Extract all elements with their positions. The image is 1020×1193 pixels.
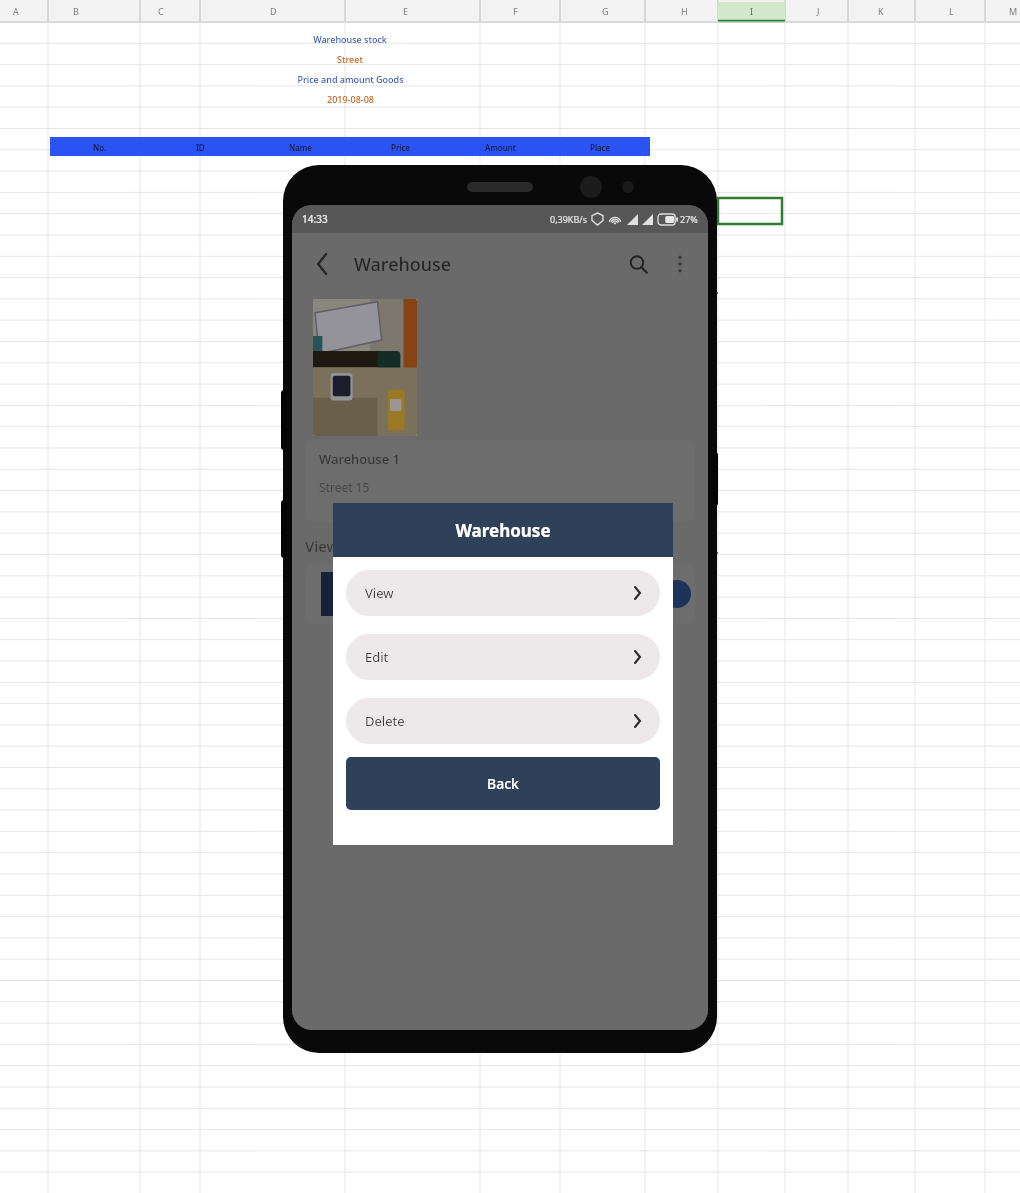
button[interactable]: Item photo <box>313 299 417 436</box>
staticText: 0,39KB/s <box>550 213 587 225</box>
staticText: B <box>73 5 79 17</box>
staticText: H <box>681 5 688 17</box>
button[interactable]: Edit <box>346 634 660 680</box>
staticText: Back <box>487 774 519 793</box>
staticText: Street 15 <box>319 479 370 495</box>
staticText: Street <box>337 53 363 65</box>
staticText: M <box>1009 5 1018 17</box>
staticText: Edit <box>365 648 389 666</box>
button[interactable]: Warehouse 1 <box>305 440 695 522</box>
staticText: Name <box>289 142 312 153</box>
staticText: E <box>403 5 409 17</box>
staticText: ID <box>196 142 205 153</box>
staticText: 2019-08-08 <box>327 93 374 105</box>
staticText: A <box>13 5 19 17</box>
staticText: Place <box>590 142 611 153</box>
staticText: Price and amount Goods <box>297 73 404 85</box>
staticText: F <box>513 5 518 17</box>
staticText: D <box>270 5 277 17</box>
staticText: I <box>750 5 754 17</box>
staticText: 27% <box>680 213 698 225</box>
staticText: Warehouse 1 <box>319 450 400 468</box>
staticText: No. <box>93 142 107 153</box>
staticText: Warehouse <box>455 519 551 542</box>
staticText: 14:33 <box>302 212 328 226</box>
button[interactable]: Search <box>616 242 660 286</box>
staticText: Warehouse stock <box>313 33 387 45</box>
staticText: Warehouse <box>354 252 452 277</box>
button[interactable]: More options <box>660 244 700 284</box>
staticText: Amount <box>485 142 516 153</box>
button[interactable]: Back <box>300 242 344 286</box>
button[interactable]: Add <box>663 580 691 608</box>
staticText: View <box>365 584 394 602</box>
button[interactable]: Delete <box>346 698 660 744</box>
staticText: C <box>158 5 164 17</box>
staticText: Delete <box>365 712 405 730</box>
staticText: View all <box>305 536 360 556</box>
staticText: K <box>878 5 884 17</box>
button[interactable]: Add <box>305 564 695 624</box>
staticText: G <box>602 5 609 17</box>
button[interactable]: Back <box>346 757 660 810</box>
staticText: L <box>949 5 954 17</box>
staticText: J <box>817 5 820 17</box>
staticText: Price <box>391 142 410 153</box>
button[interactable]: View <box>346 570 660 616</box>
